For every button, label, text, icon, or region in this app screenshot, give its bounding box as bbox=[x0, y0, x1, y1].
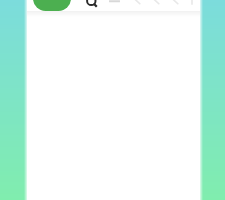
button[interactable]: More options bbox=[190, 0, 194, 9]
button[interactable]: Search bbox=[85, 0, 99, 9]
button[interactable]: Action 2 bbox=[150, 0, 162, 9]
button[interactable]: Action 1 bbox=[131, 0, 143, 9]
button[interactable]: Action 3 bbox=[169, 0, 181, 9]
button[interactable]: Primary action bbox=[33, 0, 71, 11]
button[interactable]: Menu bbox=[108, 0, 121, 9]
